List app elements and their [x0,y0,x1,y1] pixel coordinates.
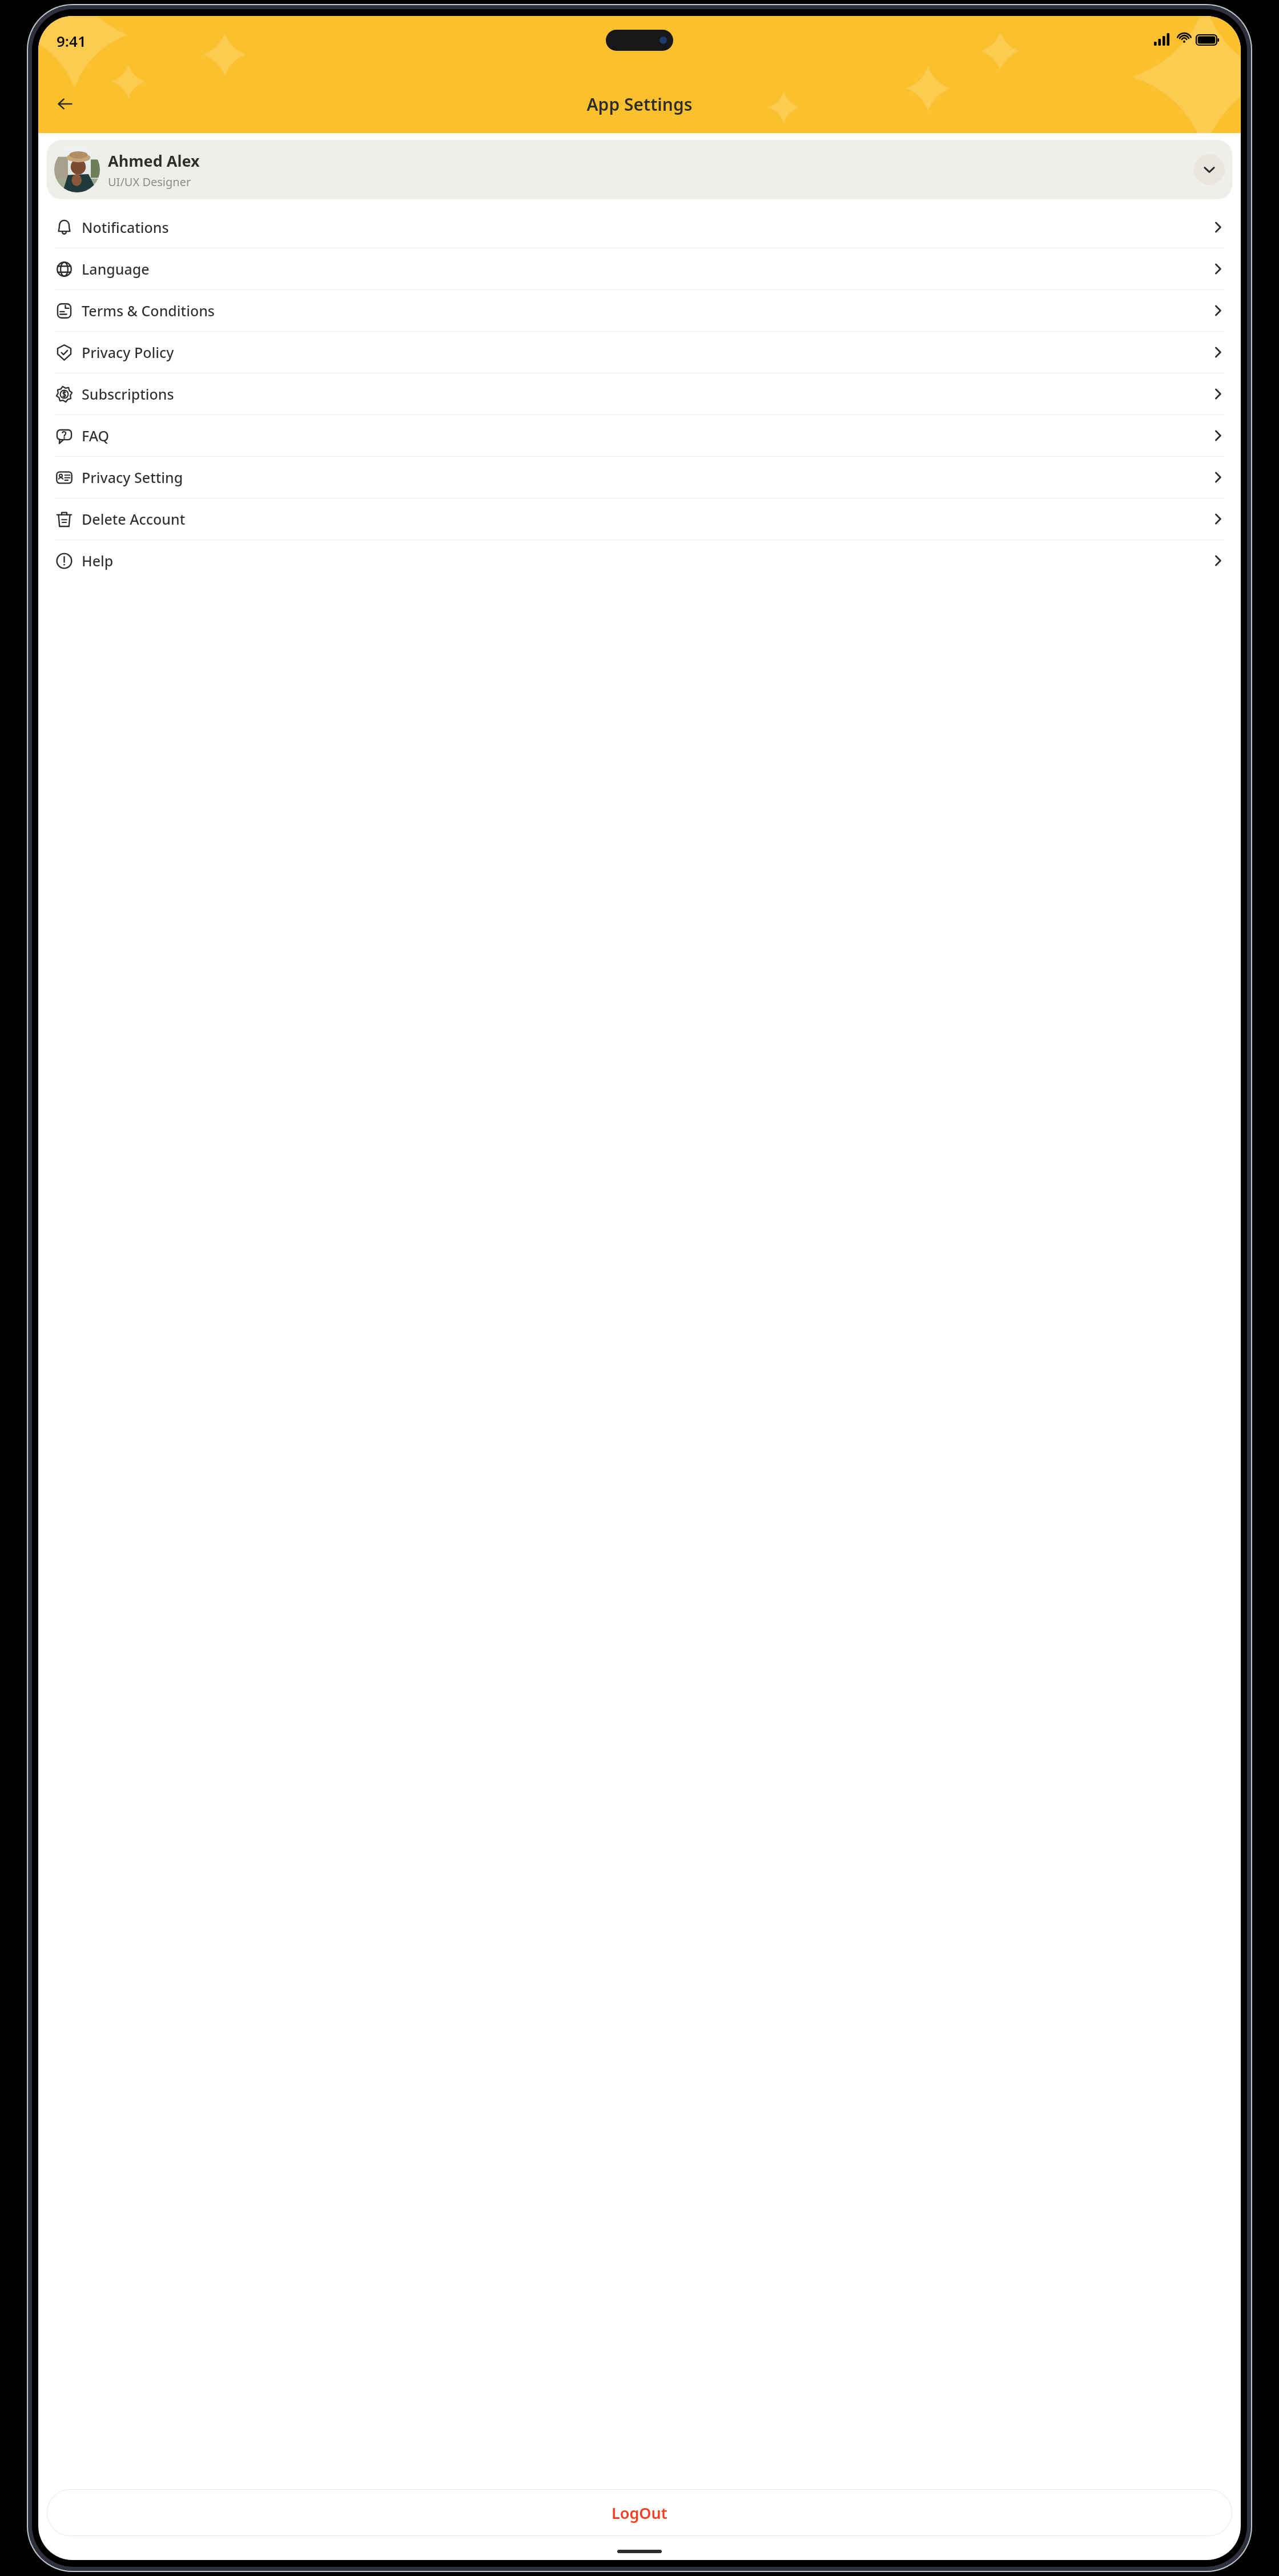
staticText: Help [82,551,114,570]
button[interactable]: Privacy Setting [38,457,1241,498]
staticText: Language [82,259,150,279]
staticText: Delete Account [82,509,186,529]
staticText: LogOut [612,2502,667,2523]
staticText: FAQ [82,426,110,445]
staticText: App Settings [82,92,1197,116]
button[interactable]: Delete Account [38,498,1241,540]
button[interactable]: Notifications [38,207,1241,248]
button[interactable]: Language [38,248,1241,289]
staticText: Terms & Conditions [82,301,215,320]
button[interactable]: Terms & Conditions [38,290,1241,331]
button[interactable]: Subscriptions [38,373,1241,414]
staticText: Privacy Setting [82,468,183,487]
button[interactable]: Ahmed Alex [47,140,1232,199]
staticText: Ahmed Alex [108,150,200,171]
staticText: Privacy Policy [82,343,174,362]
button[interactable]: LogOut [47,2489,1232,2536]
staticText: Subscriptions [82,384,174,404]
staticText: Notifications [82,218,169,237]
button[interactable]: Expand profile [1194,154,1225,185]
staticText: UI/UX Designer [108,174,191,190]
button[interactable]: Back [49,87,82,120]
button[interactable]: Help [38,540,1241,581]
button[interactable]: FAQ [38,415,1241,456]
button[interactable]: Privacy Policy [38,332,1241,373]
staticText: 9:41 [57,31,86,51]
